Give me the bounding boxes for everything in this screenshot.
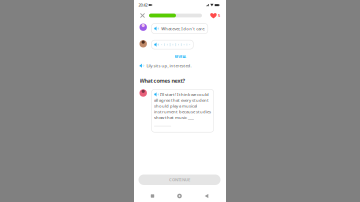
staticText: I'll start! I think we could all agree t… [154,91,211,120]
staticText: CONTINUE [169,177,190,182]
button[interactable]: REVEAL [172,54,188,60]
staticText: Lily sits up, interested. [147,63,192,68]
button[interactable]: CONTINUE [138,174,220,185]
staticText: What comes next? [139,77,185,84]
staticText: Whatever, I don't care. [161,26,205,31]
button[interactable]: Recent apps [144,190,160,201]
staticText: 5 [218,13,220,18]
staticText: 20:42 [138,2,147,8]
staticText: REVEAL [174,55,186,59]
button[interactable]: Home [171,190,187,201]
button[interactable]: Close lesson [137,10,147,21]
button[interactable]: Back [198,190,214,201]
